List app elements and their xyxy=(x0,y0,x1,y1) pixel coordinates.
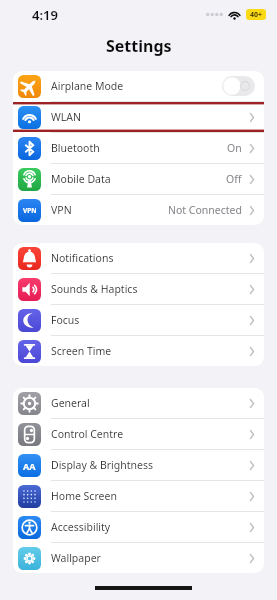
staticText: AA xyxy=(23,460,36,472)
button[interactable]: Wallpaper xyxy=(13,543,264,573)
other: Open Control Centre xyxy=(249,429,255,440)
button[interactable]: VPN xyxy=(13,195,264,225)
staticText: Sounds & Haptics xyxy=(51,282,249,296)
button[interactable]: Control Centre xyxy=(13,419,264,449)
button[interactable]: Toggle Airplane Mode xyxy=(222,76,255,96)
other: Open Sounds & Haptics xyxy=(249,284,255,295)
other: Open Display & Brightness xyxy=(249,460,255,471)
button[interactable]: AA xyxy=(13,450,264,480)
staticText: Bluetooth xyxy=(51,141,227,155)
staticText: 4:19 xyxy=(32,6,58,24)
other: Open WLAN xyxy=(249,112,255,123)
staticText: Focus xyxy=(51,313,249,327)
staticText: VPN xyxy=(51,203,168,217)
other: Open Focus xyxy=(249,315,255,326)
staticText: WLAN xyxy=(51,110,249,124)
other: Open Home Screen xyxy=(249,491,255,502)
staticText: Airplane Mode xyxy=(51,79,222,93)
staticText: Off xyxy=(226,172,242,186)
button[interactable]: Sounds & Haptics xyxy=(13,274,264,304)
button[interactable]: Accessibility xyxy=(13,512,264,542)
staticText: Display & Brightness xyxy=(51,458,249,472)
staticText: Accessibility xyxy=(51,520,249,534)
button[interactable]: General xyxy=(13,388,264,418)
staticText: Home Screen xyxy=(51,489,249,503)
button[interactable]: Mobile Data xyxy=(13,164,264,194)
staticText: On xyxy=(227,141,242,155)
other: Open Screen Time xyxy=(249,346,255,357)
staticText: Mobile Data xyxy=(51,172,226,186)
staticText: Control Centre xyxy=(51,427,249,441)
staticText: VPN xyxy=(23,206,37,215)
staticText: Not Connected xyxy=(168,203,242,217)
button[interactable]: Focus xyxy=(13,305,264,335)
button[interactable]: Screen Time xyxy=(13,336,264,366)
staticText: Screen Time xyxy=(51,344,249,358)
other: Open Accessibility xyxy=(249,522,255,533)
staticText: Notifications xyxy=(51,251,249,265)
button[interactable]: Airplane Mode xyxy=(13,71,264,101)
other: Open Mobile Data xyxy=(249,174,255,185)
staticText: Settings xyxy=(106,35,172,57)
other: Open General xyxy=(249,398,255,409)
button[interactable]: Notifications xyxy=(13,243,264,273)
button[interactable]: Home Screen xyxy=(13,481,264,511)
other: Open Wallpaper xyxy=(249,553,255,564)
staticText: General xyxy=(51,396,249,410)
button[interactable]: Bluetooth xyxy=(13,133,264,163)
other: Open Bluetooth xyxy=(249,143,255,154)
other: Open Notifications xyxy=(249,253,255,264)
other: Open VPN xyxy=(249,205,255,216)
staticText: 40+ xyxy=(250,10,263,20)
button[interactable]: WLAN xyxy=(13,102,264,132)
staticText: Wallpaper xyxy=(51,551,249,565)
